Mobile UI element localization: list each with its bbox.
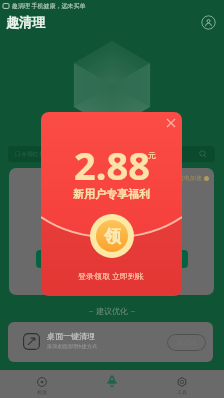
button[interactable]: Close <box>160 112 182 134</box>
staticText: 桌面一键清理 <box>47 331 95 341</box>
staticText: 建议优化 <box>96 306 128 316</box>
staticText: 添加桌面清理快捷方式 <box>47 343 97 349</box>
button[interactable]: 桌面一键清理 <box>8 322 213 362</box>
staticText: 立即清理 <box>96 254 128 264</box>
button[interactable]: 去试试 <box>167 334 206 351</box>
staticText: 趣清理 手机健康，远未买单 <box>12 2 86 10</box>
button[interactable]: 领 <box>90 214 134 258</box>
button[interactable]: 省电加速 <box>9 168 214 295</box>
staticText: 口令领红包 搜索一下 <box>15 150 71 158</box>
button[interactable]: Account <box>201 15 216 30</box>
staticText: 省电加速 <box>178 174 202 182</box>
button[interactable]: 清理 <box>94 370 130 398</box>
button[interactable]: 口令领红包 搜索一下 <box>8 146 215 162</box>
staticText: 2.88 <box>74 139 150 191</box>
staticText: 检测 <box>37 389 47 395</box>
staticText: 工具 <box>177 389 187 395</box>
button[interactable]: 工具 <box>164 370 200 398</box>
staticText: 趣清理 <box>6 14 45 30</box>
staticText: 新用户专享福利 <box>73 187 150 201</box>
staticText: 元 <box>148 150 156 160</box>
button[interactable]: 立即清理 <box>36 250 188 268</box>
staticText: 领 <box>104 226 121 247</box>
button[interactable]: 检测 <box>24 370 60 398</box>
staticText: 登录领取 立即到账 <box>78 270 145 281</box>
